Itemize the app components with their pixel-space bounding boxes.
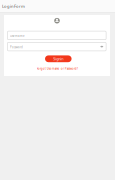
staticText: Username <box>10 34 25 38</box>
button[interactable]: Signin <box>45 55 72 62</box>
staticText: Password <box>10 45 23 49</box>
button[interactable]: Forgot Username or Password? <box>37 67 78 71</box>
staticText: Forgot Username or Password? <box>37 67 78 71</box>
staticText: Signin <box>53 56 63 61</box>
staticText: LoginForm <box>2 3 25 9</box>
